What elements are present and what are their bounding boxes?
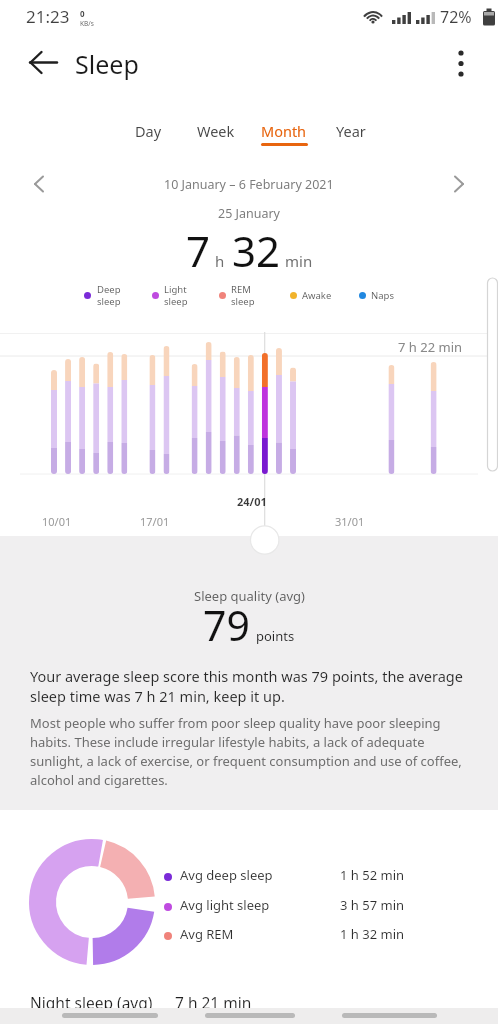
staticText: Your average sleep score this month was … [30,666,463,707]
staticText: 72% [440,6,472,28]
staticText: points [256,627,295,645]
staticText: 79 [203,597,250,653]
staticText: 3 h 57 min [340,896,405,914]
staticText: 1 h 52 min [340,866,405,884]
staticText: Light sleep [164,283,188,307]
staticText: 10/01 [42,514,72,529]
staticText: Deep sleep [97,283,121,307]
staticText: Awake [302,289,332,302]
staticText: Month [261,121,307,141]
staticText: 24/01 [237,494,267,509]
staticText: h [215,251,225,271]
staticText: Naps [371,289,394,302]
staticText: 17/01 [140,514,170,529]
staticText: 7 h 21 min [175,992,252,1013]
staticText: 31/01 [335,514,365,529]
staticText: Sleep [75,47,139,81]
staticText: Week [197,121,235,141]
staticText: 0 [80,8,85,19]
staticText: 21:23 [26,5,70,28]
staticText: Avg deep sleep [180,866,273,884]
staticText: KB/s [80,19,94,28]
staticText: REM sleep [231,283,255,307]
staticText: 7 [186,222,211,279]
staticText: Sleep quality (avg) [194,587,305,605]
staticText: 25 January [218,205,280,222]
staticText: Day [135,121,162,141]
staticText: Most people who suffer from poor sleep q… [30,714,462,789]
staticText: Year [336,121,366,141]
staticText: 10 January – 6 February 2021 [164,176,334,193]
staticText: Night sleep (avg) [30,992,153,1013]
staticText: 7 h 22 min [398,338,463,356]
staticText: min [285,251,313,271]
staticText: 1 h 32 min [340,925,405,943]
staticText: 32 [232,222,281,279]
staticText: Avg light sleep [180,896,270,914]
staticText: Avg REM [180,925,234,943]
